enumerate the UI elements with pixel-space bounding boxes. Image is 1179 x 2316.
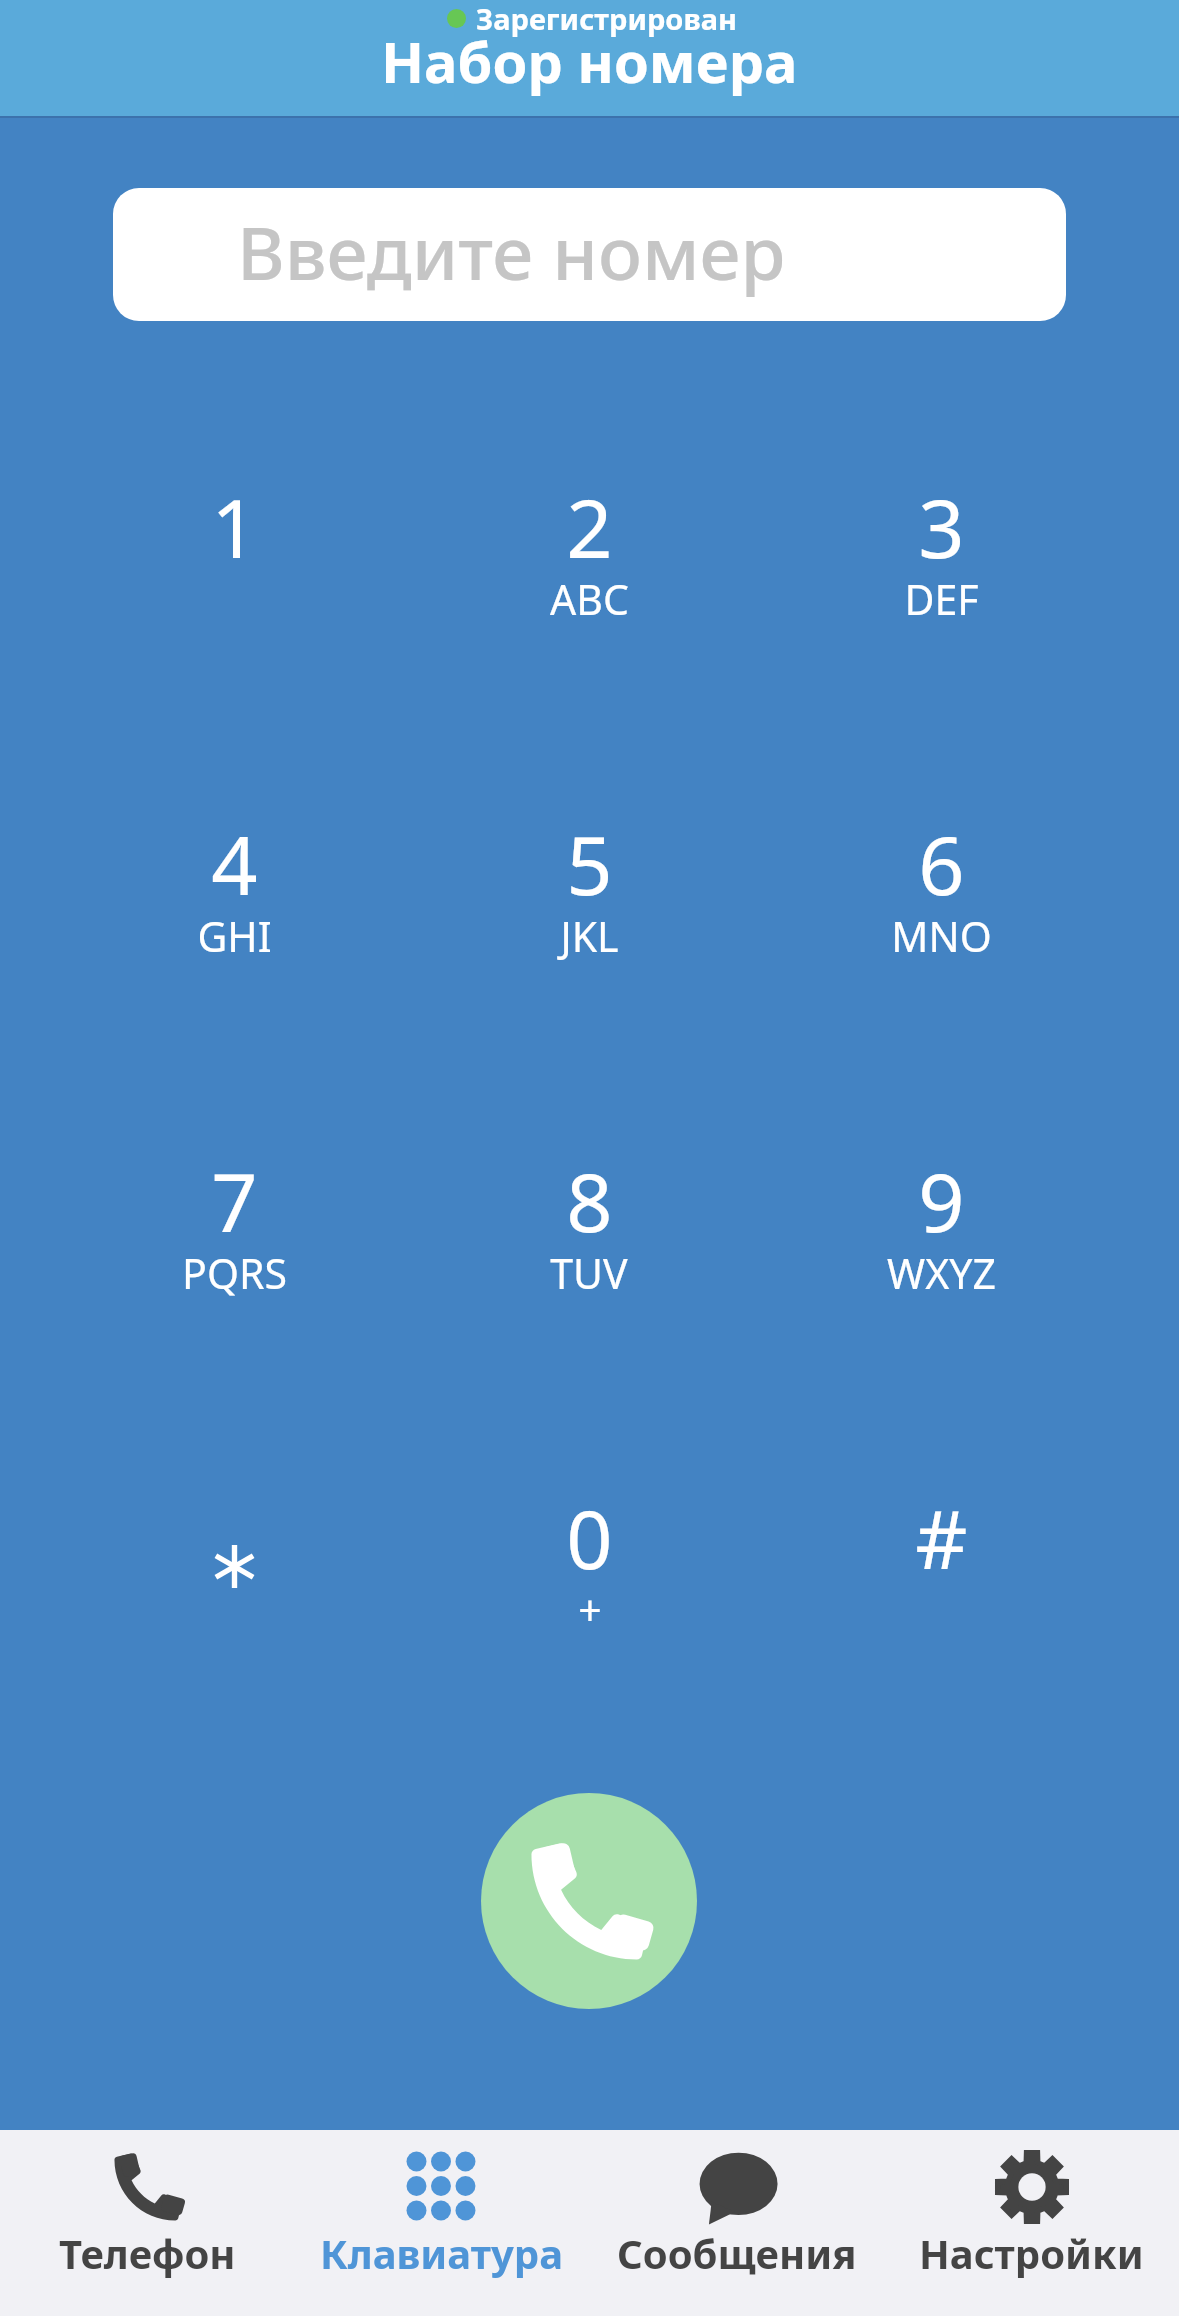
staticText: 1 <box>211 471 258 581</box>
button[interactable]: 3 <box>781 471 1101 711</box>
button[interactable]: Введите номер <box>113 188 1066 321</box>
staticText: DEF <box>904 571 979 627</box>
button[interactable]: Телефон <box>0 2130 294 2316</box>
staticText: + <box>578 1582 602 1638</box>
staticText: Набор номера <box>381 23 798 99</box>
button[interactable]: 8 <box>429 1145 749 1385</box>
staticText: 2 <box>566 471 613 581</box>
staticText: # <box>915 1482 968 1592</box>
button[interactable]: 5 <box>429 808 749 1048</box>
staticText: 4 <box>211 808 258 918</box>
staticText: 7 <box>211 1145 258 1255</box>
staticText: 6 <box>918 808 965 918</box>
button[interactable]: Позвонить <box>481 1793 697 2009</box>
staticText: 5 <box>566 808 613 918</box>
staticText: Введите номер <box>237 202 786 301</box>
staticText: WXYZ <box>887 1245 996 1301</box>
staticText: PQRS <box>182 1245 287 1301</box>
button[interactable]: 0 <box>429 1482 749 1722</box>
staticText: JKL <box>560 908 619 964</box>
button[interactable]: 9 <box>781 1145 1101 1385</box>
staticText: TUV <box>550 1245 628 1301</box>
button[interactable]: # <box>781 1482 1101 1722</box>
button[interactable]: 2 <box>429 471 749 711</box>
staticText: Сообщения <box>617 2226 857 2280</box>
staticText: 0 <box>566 1482 613 1592</box>
staticText: MNO <box>891 908 992 964</box>
staticText: Зарегистрирован <box>476 0 737 38</box>
staticText: Настройки <box>919 2226 1144 2280</box>
staticText: 3 <box>918 471 965 581</box>
staticText: Клавиатура <box>320 2226 563 2280</box>
button[interactable]: * <box>74 1482 394 1722</box>
button[interactable]: Настройки <box>884 2130 1179 2316</box>
button[interactable]: 4 <box>74 808 394 1048</box>
staticText: GHI <box>197 908 272 964</box>
staticText: Телефон <box>59 2226 236 2280</box>
staticText: ABC <box>550 571 629 627</box>
button[interactable]: 7 <box>74 1145 394 1385</box>
staticText: 9 <box>918 1145 965 1255</box>
staticText: 8 <box>566 1145 613 1255</box>
button[interactable]: Сообщения <box>589 2130 884 2316</box>
button[interactable]: 1 <box>74 471 394 711</box>
button[interactable]: Клавиатура <box>294 2130 589 2316</box>
button[interactable]: 6 <box>781 808 1101 1048</box>
